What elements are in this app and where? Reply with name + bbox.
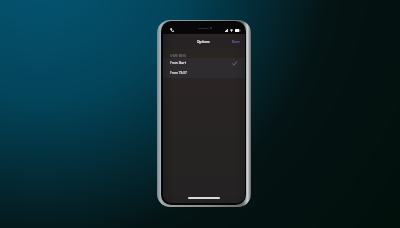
- button[interactable]: Done: [228, 37, 245, 47]
- staticText: Done: [232, 40, 241, 44]
- button[interactable]: From Start: [163, 58, 245, 68]
- button[interactable]: From 73:37: [163, 68, 245, 78]
- staticText: From 73:37: [170, 71, 187, 75]
- staticText: From Start: [170, 61, 186, 65]
- staticText: Options: [197, 39, 210, 43]
- other: Active call: [170, 28, 174, 32]
- staticText: SHARE MENU: [170, 54, 187, 58]
